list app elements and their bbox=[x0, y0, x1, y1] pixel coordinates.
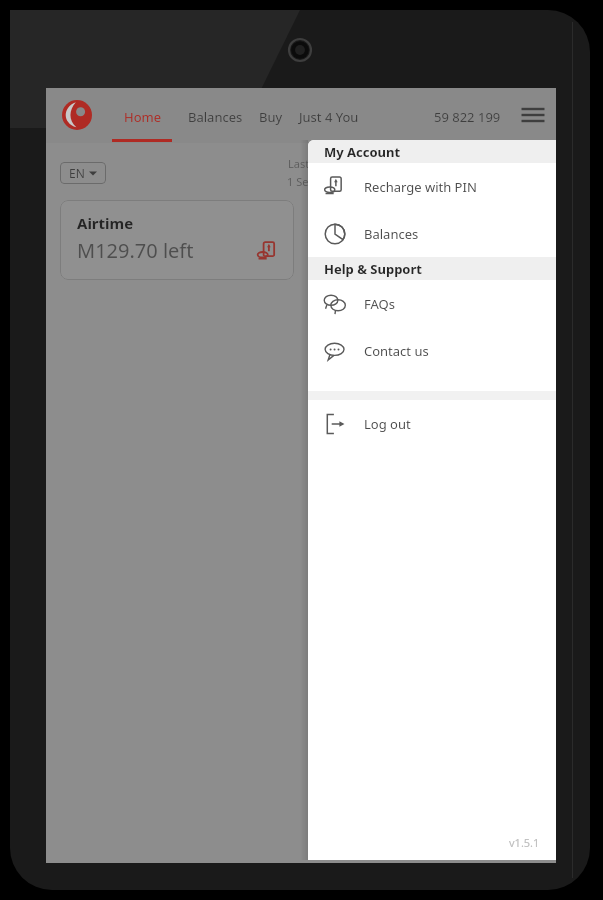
button[interactable]: Open menu bbox=[516, 101, 550, 129]
button[interactable]: Contact us bbox=[308, 327, 556, 374]
button[interactable]: Recharge with PIN bbox=[308, 163, 556, 210]
staticText: Last updated bbox=[288, 156, 356, 171]
staticText: Recharge with PIN bbox=[364, 178, 477, 196]
button[interactable]: Home bbox=[112, 88, 172, 143]
staticText: Help & Support bbox=[324, 260, 422, 278]
button[interactable]: FAQs bbox=[308, 280, 556, 327]
other: Vodafone logo bbox=[62, 100, 92, 130]
staticText: v1.5.1 bbox=[509, 835, 540, 850]
staticText: Log out bbox=[364, 415, 411, 433]
button[interactable]: Balances bbox=[188, 88, 243, 143]
staticText: M129.70 left bbox=[77, 237, 194, 264]
button[interactable]: Just 4 You bbox=[299, 88, 359, 143]
button[interactable]: Balances bbox=[308, 210, 556, 257]
staticText: EN bbox=[69, 165, 85, 181]
staticText: 1 Sep 2021, 1 bbox=[287, 174, 356, 189]
staticText: FAQs bbox=[364, 295, 395, 313]
staticText: My Account bbox=[324, 143, 401, 161]
staticText: Airtime bbox=[77, 213, 134, 233]
staticText: 59 822 199 bbox=[434, 108, 501, 126]
button[interactable]: EN bbox=[60, 162, 106, 184]
staticText: Buy bbox=[259, 108, 283, 126]
button[interactable]: Log out bbox=[308, 400, 556, 447]
staticText: Just 4 You bbox=[299, 108, 359, 126]
button[interactable]: Buy bbox=[259, 88, 283, 143]
staticText: Contact us bbox=[364, 342, 429, 360]
staticText: Balances bbox=[188, 108, 243, 126]
button[interactable]: Airtime bbox=[60, 200, 294, 280]
staticText: Balances bbox=[364, 225, 419, 243]
staticText: Home bbox=[124, 108, 161, 126]
